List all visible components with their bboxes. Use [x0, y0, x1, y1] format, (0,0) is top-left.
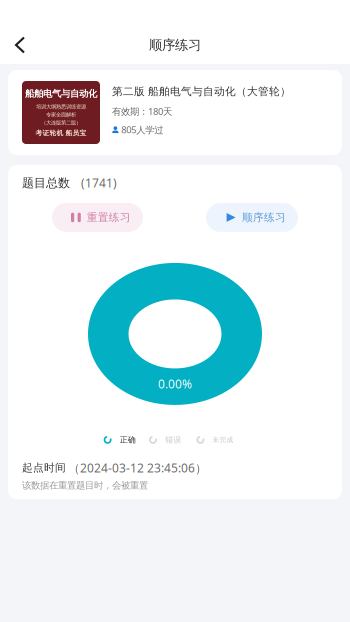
staticText: 未完成 [213, 436, 234, 444]
staticText: 顺序练习 [149, 37, 201, 53]
staticText: 错误 [165, 435, 181, 445]
staticText: 培训大纲熟悉训练资源 [36, 103, 86, 110]
staticText: 题目总数 [22, 176, 70, 190]
staticText: （2024-03-12 23:45:06） [68, 460, 207, 476]
staticText: （大连版第二版） [41, 120, 81, 126]
staticText: 第二版 船舶电气与自动化（大管轮） [112, 85, 291, 98]
staticText: 805人学过 [121, 123, 163, 136]
button[interactable]: 船舶电气与自动化 [8, 70, 342, 155]
staticText: (1741) [81, 175, 117, 191]
button[interactable]: 返回 [4, 30, 36, 60]
staticText: 该数据在重置题目时，会被重置 [22, 480, 148, 491]
button[interactable]: 重置练习 [52, 203, 143, 232]
button[interactable]: 顺序练习 [206, 203, 298, 232]
staticText: 起点时间 [22, 461, 66, 474]
staticText: 0.00% [158, 376, 192, 392]
staticText: 顺序练习 [242, 211, 286, 224]
staticText: 重置练习 [87, 211, 131, 224]
staticText: 船舶电气与自动化 [25, 88, 97, 99]
staticText: 有效期：180天 [112, 105, 172, 117]
staticText: 考证轮机 船员宝 [35, 129, 86, 137]
staticText: 专家全面解析 [46, 111, 76, 118]
staticText: 正确 [120, 435, 136, 445]
